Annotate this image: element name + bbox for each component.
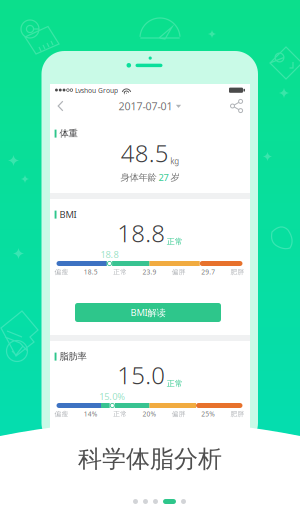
- staticText: 2017-07-01: [118, 99, 172, 113]
- staticText: kg: [170, 156, 179, 166]
- staticText: 正常: [167, 237, 183, 246]
- staticText: 正常: [167, 379, 183, 388]
- staticText: 肥胖: [230, 268, 244, 276]
- staticText: 48.5: [121, 137, 169, 169]
- staticText: 偏胖: [172, 410, 186, 418]
- staticText: 偏瘦: [54, 410, 68, 418]
- staticText: 23.9: [142, 268, 156, 276]
- staticText: 27: [158, 171, 168, 184]
- staticText: 科学体脂分析: [78, 444, 222, 474]
- staticText: 20%: [142, 410, 156, 418]
- staticText: 正常: [113, 410, 127, 418]
- staticText: 肥胖: [230, 410, 244, 418]
- staticText: 14%: [84, 410, 98, 418]
- button[interactable]: Back: [0, 0, 300, 530]
- button[interactable]: 2017-07-01: [0, 0, 300, 530]
- button[interactable]: Share: [0, 0, 300, 530]
- staticText: 25%: [201, 410, 215, 418]
- staticText: 18.8: [117, 217, 165, 249]
- staticText: 脂肪率: [60, 351, 87, 362]
- staticText: 18.5: [84, 268, 98, 276]
- staticText: 岁: [170, 172, 179, 183]
- staticText: BMI解读: [130, 306, 165, 319]
- staticText: 偏胖: [172, 268, 186, 276]
- button[interactable]: BMI解读: [0, 0, 300, 530]
- staticText: 15.0%: [99, 390, 125, 403]
- staticText: Lvshou Group: [75, 86, 118, 95]
- staticText: 正常: [113, 268, 127, 276]
- staticText: 29.7: [201, 268, 215, 276]
- staticText: 偏瘦: [54, 268, 68, 276]
- staticText: BMI: [60, 208, 77, 221]
- staticText: 18.8: [100, 248, 118, 261]
- staticText: 15.0: [117, 359, 165, 391]
- staticText: 体重: [60, 128, 78, 139]
- staticText: 身体年龄: [120, 172, 156, 183]
